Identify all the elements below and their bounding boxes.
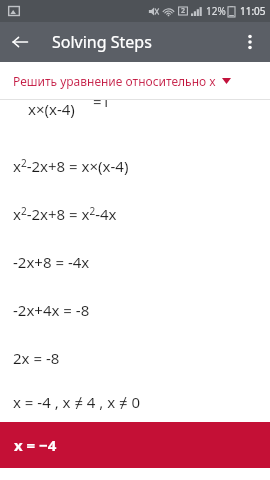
staticText: x = -4 , x ≠ 4 , x ≠ 0 — [13, 392, 141, 412]
staticText: =1 — [89, 100, 111, 111]
button[interactable]: x = -4 , x ≠ 4 , x ≠ 0 — [0, 382, 270, 422]
staticText: 2 — [181, 6, 186, 16]
staticText: -2x+4x = -8 — [13, 300, 90, 320]
staticText: Решить уравнение относительно x — [13, 73, 216, 89]
button[interactable]: x2-2x+8 = x×(x-4) — [0, 142, 270, 190]
button[interactable]: Back — [0, 22, 40, 62]
staticText: -2x+8 = -4x — [13, 252, 90, 272]
staticText: x2-2x+8 = x2-4x — [13, 204, 117, 224]
button[interactable]: More options — [230, 22, 270, 62]
button[interactable]: Решить уравнение относительно x — [0, 62, 270, 99]
button[interactable]: -2x+8 = -4x — [0, 238, 270, 286]
staticText: x = −4 — [14, 435, 57, 455]
staticText: Solving Steps — [52, 31, 152, 53]
staticText: x×(x-4) — [28, 100, 75, 119]
button[interactable]: x2-2x+8 = x2-4x — [0, 190, 270, 238]
staticText: x2-2x+8 = x×(x-4) — [13, 156, 129, 176]
staticText: 2x = -8 — [13, 348, 60, 368]
staticText: 12% — [206, 4, 226, 18]
button[interactable]: -2x+4x = -8 — [0, 286, 270, 334]
staticText: 11:05 — [240, 4, 266, 18]
button[interactable]: x = −4 — [0, 422, 270, 468]
button[interactable]: 2x = -8 — [0, 334, 270, 382]
